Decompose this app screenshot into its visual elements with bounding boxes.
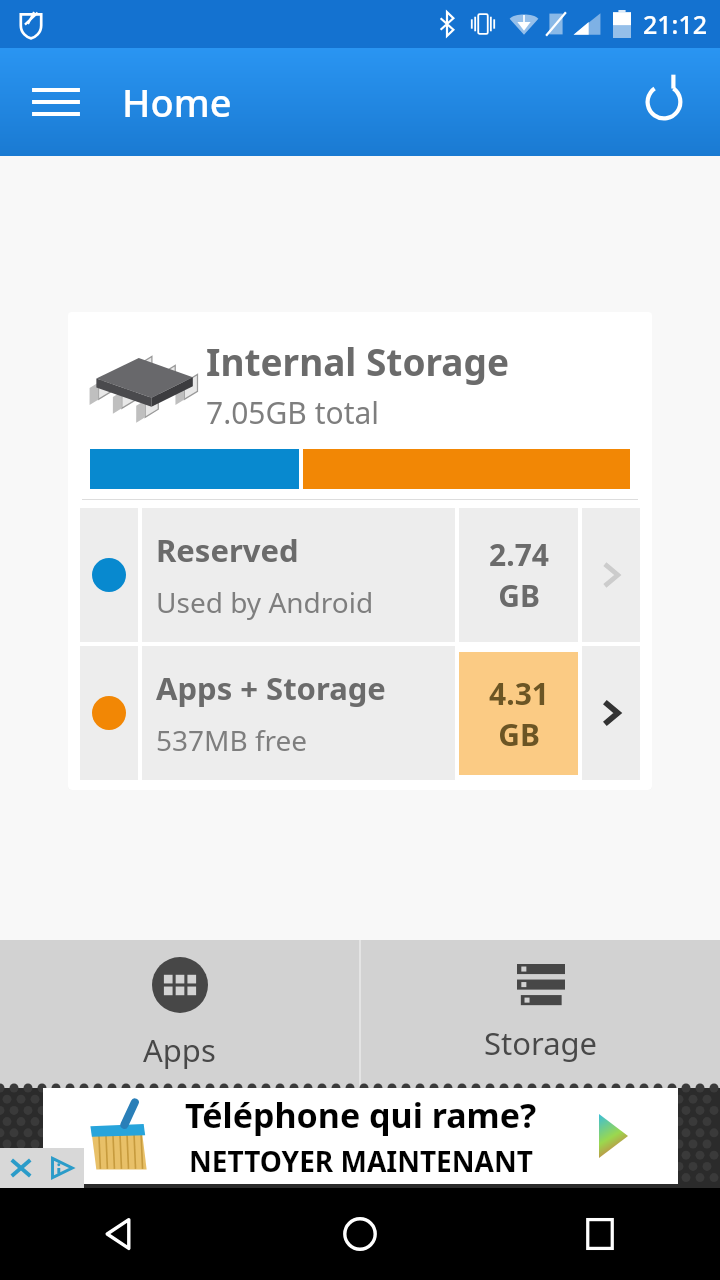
button[interactable]: Storage xyxy=(361,940,720,1088)
button[interactable]: Apps + Storage xyxy=(80,646,640,780)
staticText: 4.31 xyxy=(489,673,549,714)
button[interactable]: Open Reserved details xyxy=(582,508,640,642)
staticText: Internal Storage xyxy=(206,336,509,386)
staticText: Home xyxy=(122,76,232,128)
staticText: 537MB free xyxy=(156,721,308,759)
button[interactable]: Back xyxy=(0,1188,240,1280)
staticText: 21:12 xyxy=(643,7,708,41)
staticText: 2.74 xyxy=(489,534,549,575)
staticText: NETTOYER MAINTENANT xyxy=(189,1142,533,1180)
staticText: 7.05GB total xyxy=(206,392,380,433)
button[interactable]: Téléphone qui rame? xyxy=(0,1088,720,1188)
staticText: Used by Android xyxy=(156,583,374,621)
button[interactable]: Reserved xyxy=(80,508,640,642)
staticText: Apps + Storage xyxy=(156,667,386,709)
staticText: Apps xyxy=(143,1029,216,1071)
staticText: GB xyxy=(498,575,540,616)
button[interactable]: Open Apps + Storage details xyxy=(582,646,640,780)
staticText: GB xyxy=(498,714,540,755)
button[interactable]: Refresh xyxy=(630,68,698,136)
button[interactable]: Apps xyxy=(0,940,359,1088)
button[interactable]: Open navigation menu xyxy=(22,68,90,136)
staticText: Téléphone qui rame? xyxy=(185,1092,537,1138)
staticText: Storage xyxy=(484,1022,598,1064)
staticText: Reserved xyxy=(156,529,299,571)
button[interactable]: Recent apps xyxy=(480,1188,720,1280)
button[interactable]: Home xyxy=(240,1188,480,1280)
